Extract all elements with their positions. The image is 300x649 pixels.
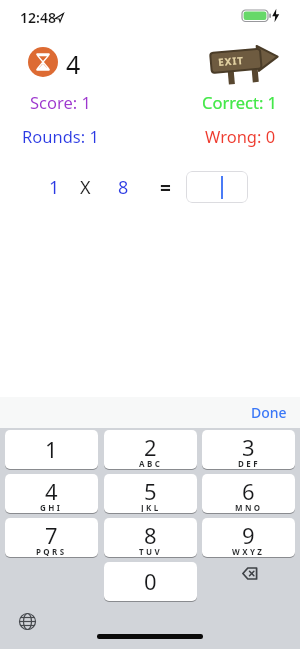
button[interactable]: 6 [202,474,295,513]
button[interactable] [186,171,248,203]
staticText: 4 [66,47,81,81]
button[interactable]: 5 [104,474,197,513]
button[interactable]: 4 [5,474,98,513]
staticText: PQRS [36,546,67,556]
staticText: 1 [49,175,60,200]
staticText: TUV [139,546,163,556]
staticText: 6 [242,476,255,504]
staticText: 9 [242,520,255,548]
staticText: 8 [144,520,157,548]
staticText: Correct: 1 [202,91,278,113]
button[interactable]: 8 [104,518,197,557]
staticText: ABC [139,458,163,468]
staticText: DEF [238,458,260,468]
staticText: 5 [144,476,157,504]
staticText: EXIT [217,53,244,69]
button[interactable]: 1 [5,430,98,469]
staticText: = [160,175,171,200]
button[interactable]: 2 [104,430,197,469]
staticText: 2 [144,432,157,460]
button[interactable]: EXIT [206,40,284,88]
staticText: Score: 1 [30,91,91,113]
button[interactable]: 3 [202,430,295,469]
staticText: 3 [242,432,255,460]
button[interactable] [9,603,45,639]
staticText: 8 [118,175,129,200]
button[interactable] [228,558,272,589]
button[interactable]: 9 [202,518,295,557]
button[interactable]: 7 [5,518,98,557]
staticText: 0 [144,566,157,596]
staticText: 4 [45,476,58,504]
staticText: 7 [45,520,58,548]
staticText: 1 [45,434,58,464]
staticText: X [80,175,91,200]
staticText: JKL [141,502,161,512]
staticText: MNO [235,502,263,512]
staticText: Rounds: 1 [22,125,99,147]
button[interactable]: 0 [104,562,197,601]
staticText: Wrong: 0 [205,125,276,147]
staticText: Done [251,403,287,422]
button[interactable]: Done [240,397,298,428]
staticText: GHI [40,502,63,512]
staticText: 12:48 [20,8,56,27]
staticText: WXYZ [232,546,265,556]
